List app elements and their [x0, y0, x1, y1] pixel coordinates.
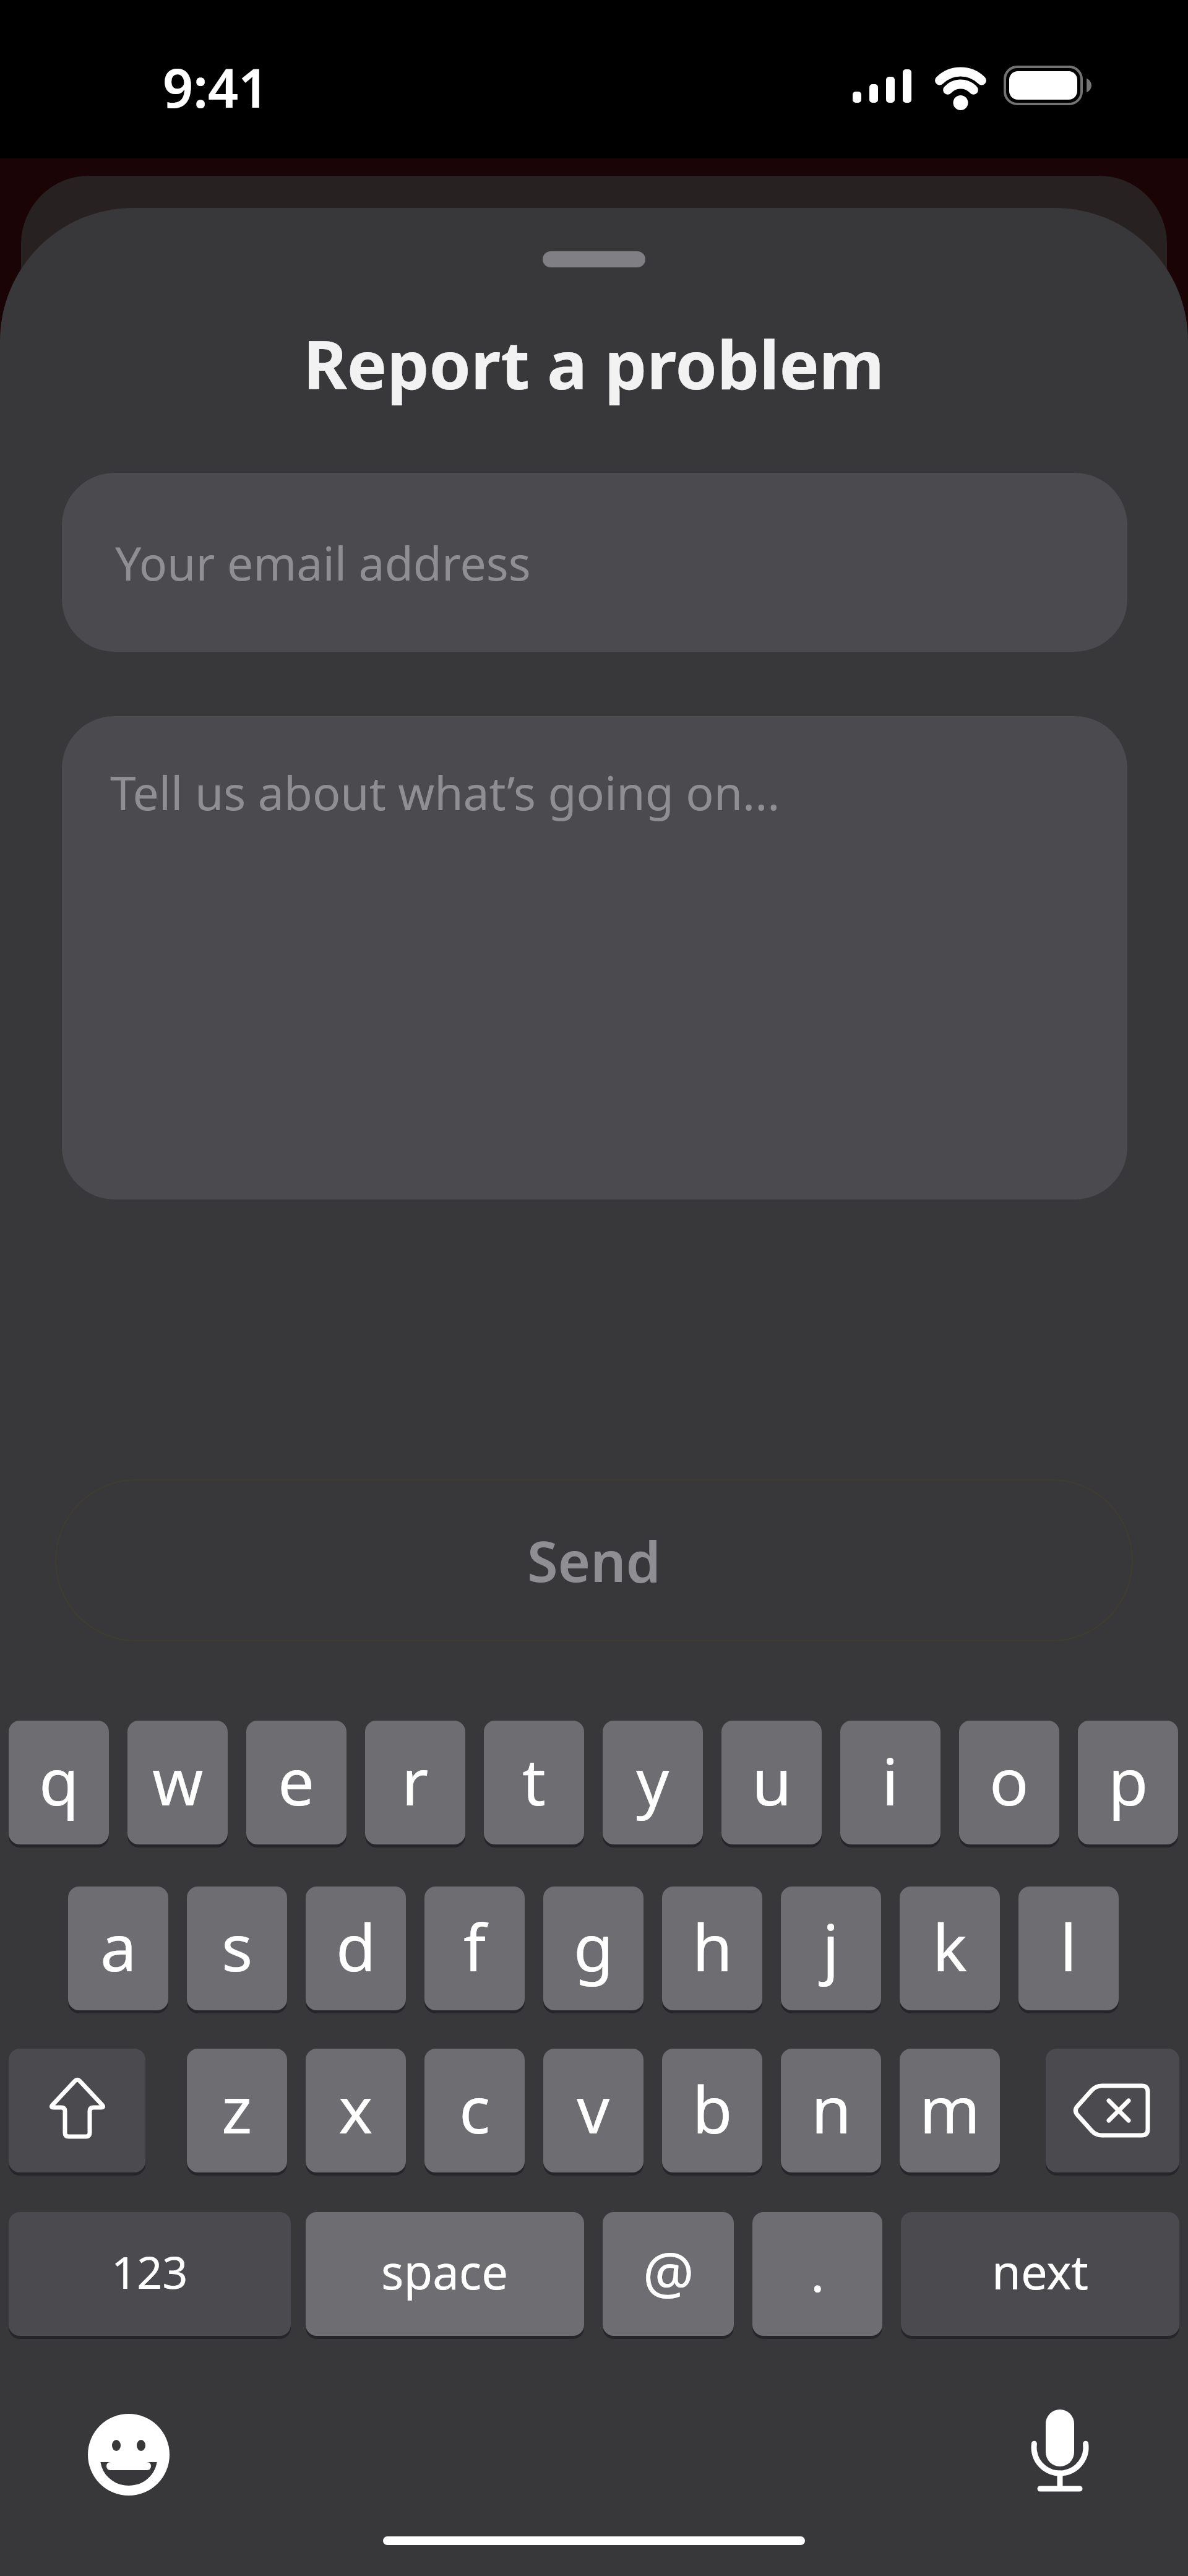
button[interactable]: f	[424, 1887, 525, 2010]
staticText: v	[577, 2064, 610, 2153]
button[interactable]: .	[752, 2212, 882, 2336]
staticText: Send	[527, 1523, 661, 1599]
button[interactable]: y	[603, 1721, 703, 1844]
button[interactable]	[9, 2049, 145, 2172]
button[interactable]	[88, 2414, 170, 2496]
staticText: o	[989, 1736, 1029, 1825]
staticText: .	[811, 2236, 825, 2307]
button[interactable]: s	[187, 1887, 287, 2010]
button[interactable]: Tell us about what’s going on...	[62, 716, 1127, 1199]
staticText: space	[381, 2239, 509, 2304]
staticText: x	[338, 2064, 373, 2153]
button[interactable]: Send	[55, 1479, 1133, 1641]
staticText: a	[100, 1902, 137, 1990]
staticText: k	[932, 1902, 968, 1990]
button[interactable]: b	[662, 2049, 762, 2172]
button[interactable]: n	[781, 2049, 881, 2172]
button[interactable]: Your email address	[62, 473, 1127, 652]
staticText: 9:41	[163, 51, 269, 123]
button[interactable]: x	[306, 2049, 406, 2172]
staticText: Report a problem	[303, 318, 885, 409]
button[interactable]	[1021, 2408, 1099, 2500]
staticText: r	[402, 1736, 429, 1825]
staticText: z	[222, 2064, 252, 2153]
button[interactable]: p	[1078, 1721, 1178, 1844]
staticText: 123	[111, 2241, 188, 2302]
staticText: Tell us about what’s going on...	[110, 761, 780, 824]
button[interactable]: g	[543, 1887, 643, 2010]
staticText: d	[336, 1902, 376, 1990]
staticText: w	[152, 1736, 204, 1825]
staticText: n	[811, 2064, 851, 2153]
staticText: p	[1108, 1736, 1148, 1825]
staticText: @	[643, 2233, 694, 2310]
button[interactable]: space	[306, 2212, 584, 2336]
button[interactable]: e	[246, 1721, 346, 1844]
staticText: l	[1060, 1902, 1077, 1990]
staticText: b	[692, 2064, 733, 2153]
button[interactable]: o	[959, 1721, 1059, 1844]
button[interactable]: m	[900, 2049, 1000, 2172]
staticText: e	[278, 1736, 315, 1825]
button[interactable]: next	[901, 2212, 1179, 2336]
staticText: f	[463, 1902, 486, 1990]
button[interactable]: c	[424, 2049, 525, 2172]
button[interactable]: a	[68, 1887, 168, 2010]
staticText: q	[39, 1736, 79, 1825]
button[interactable]: r	[365, 1721, 465, 1844]
button[interactable]: j	[781, 1887, 881, 2010]
staticText: i	[882, 1736, 899, 1825]
button[interactable]: q	[9, 1721, 109, 1844]
staticText: s	[222, 1902, 253, 1990]
staticText: u	[752, 1736, 792, 1825]
button[interactable]: 123	[9, 2212, 291, 2336]
staticText: next	[992, 2239, 1088, 2304]
staticText: t	[522, 1736, 546, 1825]
button[interactable]: d	[306, 1887, 406, 2010]
button[interactable]: w	[127, 1721, 228, 1844]
button[interactable]: k	[900, 1887, 1000, 2010]
staticText: c	[459, 2064, 491, 2153]
staticText: g	[574, 1902, 614, 1990]
button[interactable]: z	[187, 2049, 287, 2172]
button[interactable]: u	[721, 1721, 822, 1844]
button[interactable]	[1046, 2049, 1179, 2172]
button[interactable]: h	[662, 1887, 762, 2010]
button[interactable]: l	[1018, 1887, 1119, 2010]
button[interactable]: @	[603, 2212, 734, 2336]
button[interactable]: v	[543, 2049, 643, 2172]
button[interactable]: t	[484, 1721, 584, 1844]
staticText: j	[822, 1902, 840, 1990]
staticText: m	[919, 2064, 981, 2153]
staticText: h	[692, 1902, 733, 1990]
button[interactable]: i	[840, 1721, 940, 1844]
staticText: y	[636, 1736, 669, 1825]
staticText: Your email address	[115, 531, 531, 594]
